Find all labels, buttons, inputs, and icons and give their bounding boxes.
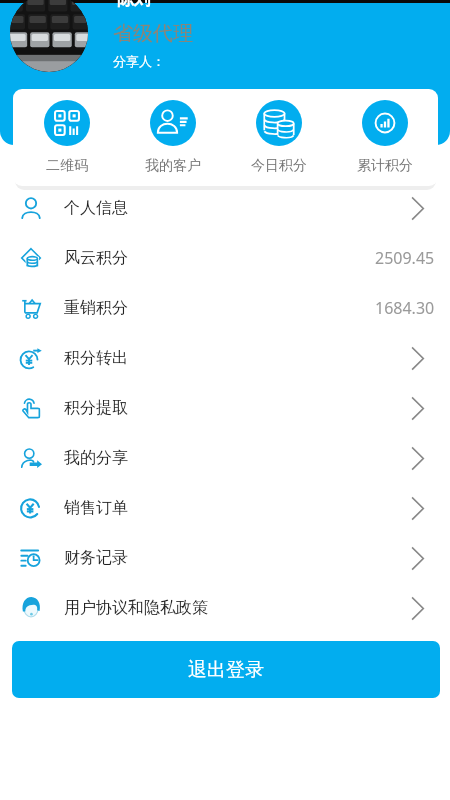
- staticText: 累计积分: [357, 157, 413, 175]
- button[interactable]: 财务记录: [0, 533, 450, 583]
- button[interactable]: 今日积分: [226, 89, 332, 186]
- staticText: 我的分享: [64, 448, 128, 468]
- button[interactable]: 用户协议和隐私政策: [0, 583, 450, 633]
- staticText: 重销积分: [64, 298, 128, 318]
- button[interactable]: 积分提取: [0, 383, 450, 433]
- staticText: 分享人：: [113, 53, 165, 69]
- staticText: 退出登录: [188, 658, 264, 682]
- staticText: 今日积分: [251, 157, 307, 175]
- button[interactable]: 重销积分: [0, 283, 450, 333]
- staticText: 财务记录: [64, 548, 128, 568]
- button[interactable]: 累计积分: [332, 89, 438, 186]
- button[interactable]: 我的客户: [120, 89, 226, 186]
- button[interactable]: 个人信息: [0, 183, 450, 233]
- staticText: 二维码: [46, 157, 88, 175]
- button[interactable]: 我的分享: [0, 433, 450, 483]
- staticText: 风云积分: [64, 248, 128, 268]
- staticText: 用户协议和隐私政策: [64, 598, 208, 618]
- button[interactable]: 风云积分: [0, 233, 450, 283]
- button[interactable]: 二维码: [13, 89, 120, 186]
- button[interactable]: 退出登录: [12, 641, 440, 698]
- staticText: 积分转出: [64, 348, 128, 368]
- staticText: 陈刘: [117, 0, 151, 10]
- button[interactable]: 销售订单: [0, 483, 450, 533]
- button[interactable]: 积分转出: [0, 333, 450, 383]
- staticText: 个人信息: [64, 198, 128, 218]
- staticText: 2509.45: [375, 247, 435, 269]
- staticText: 积分提取: [64, 398, 128, 418]
- staticText: 省级代理: [113, 21, 193, 46]
- staticText: 销售订单: [64, 498, 128, 518]
- staticText: 1684.30: [375, 297, 435, 319]
- staticText: 我的客户: [145, 157, 201, 175]
- button[interactable]: Profile photo: [10, 0, 88, 72]
